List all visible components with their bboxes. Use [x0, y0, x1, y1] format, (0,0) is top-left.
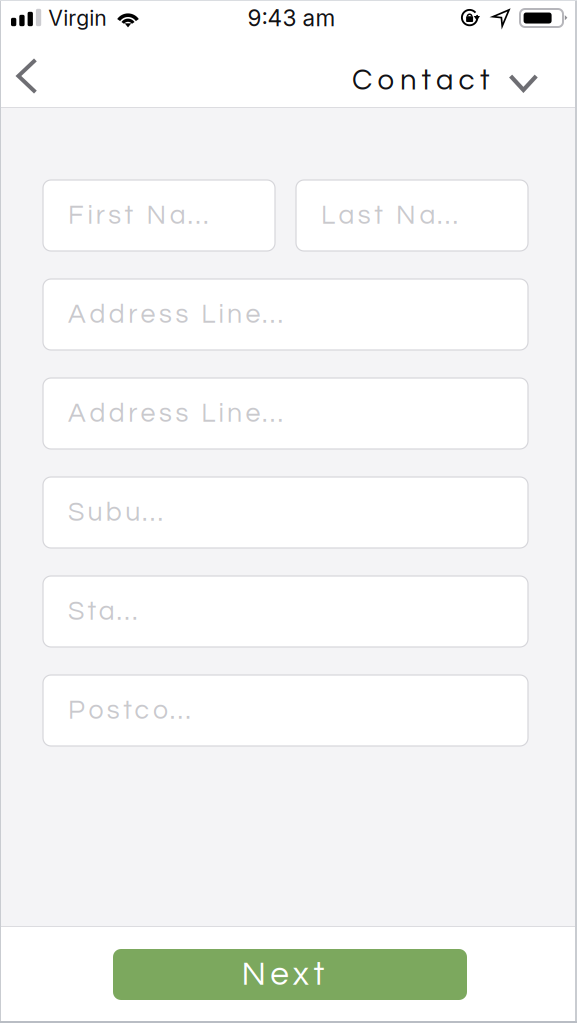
staticText: Postcode [68, 697, 206, 724]
button[interactable]: Address Line 1 [43, 279, 528, 350]
button[interactable]: Suburb [43, 477, 528, 548]
staticText: Address Line 2 [68, 400, 288, 427]
button[interactable]: Postcode [43, 675, 528, 746]
button[interactable]: Show more [490, 36, 557, 108]
button[interactable]: Last Name [296, 180, 528, 251]
button[interactable]: Back [0, 36, 54, 108]
staticText: Last Name [321, 202, 480, 229]
staticText: Virgin [48, 5, 107, 31]
staticText: Address Line 1 [68, 301, 288, 328]
button[interactable]: First Name [43, 180, 275, 251]
staticText: State [68, 598, 145, 625]
button[interactable]: Address Line 2 [43, 378, 528, 449]
button[interactable]: State [43, 576, 528, 647]
staticText: Suburb [68, 499, 172, 526]
staticText: Next [242, 957, 324, 992]
staticText: Contact [352, 65, 490, 96]
staticText: First Name [68, 202, 231, 229]
button[interactable]: Next [113, 949, 467, 1000]
staticText: 9:43 am [247, 4, 335, 32]
